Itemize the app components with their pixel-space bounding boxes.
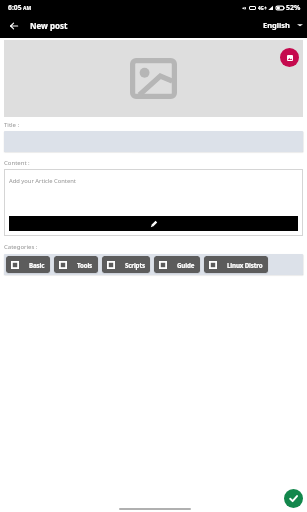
staticText: Tools (77, 261, 93, 269)
staticText: 4G (258, 5, 264, 11)
staticText: 6:05 (8, 3, 22, 12)
staticText: Content : (4, 159, 30, 167)
staticText: English (263, 20, 290, 30)
staticText: Scripts (125, 261, 145, 269)
button[interactable]: Save post (284, 489, 303, 508)
button[interactable]: Tools (54, 256, 98, 273)
staticText: New post (30, 20, 68, 31)
button[interactable]: English (263, 20, 303, 30)
button[interactable]: Pick image (280, 48, 299, 67)
button[interactable]: Linux Distro (204, 256, 268, 273)
staticText: Basic (29, 261, 45, 269)
button[interactable]: Guide (154, 256, 200, 273)
button[interactable]: Back (6, 18, 22, 34)
staticText: Add your Article Content (9, 177, 76, 185)
staticText: Title : (4, 121, 20, 129)
button[interactable]: Edit content (9, 216, 298, 231)
staticText: Linux Distro (227, 261, 263, 269)
staticText: 52% (286, 3, 301, 13)
staticText: Guide (177, 261, 195, 269)
button[interactable]: Scripts (102, 256, 150, 273)
button[interactable]: Basic (6, 256, 50, 273)
staticText: Categories : (4, 243, 38, 251)
staticText: AM (23, 5, 32, 12)
